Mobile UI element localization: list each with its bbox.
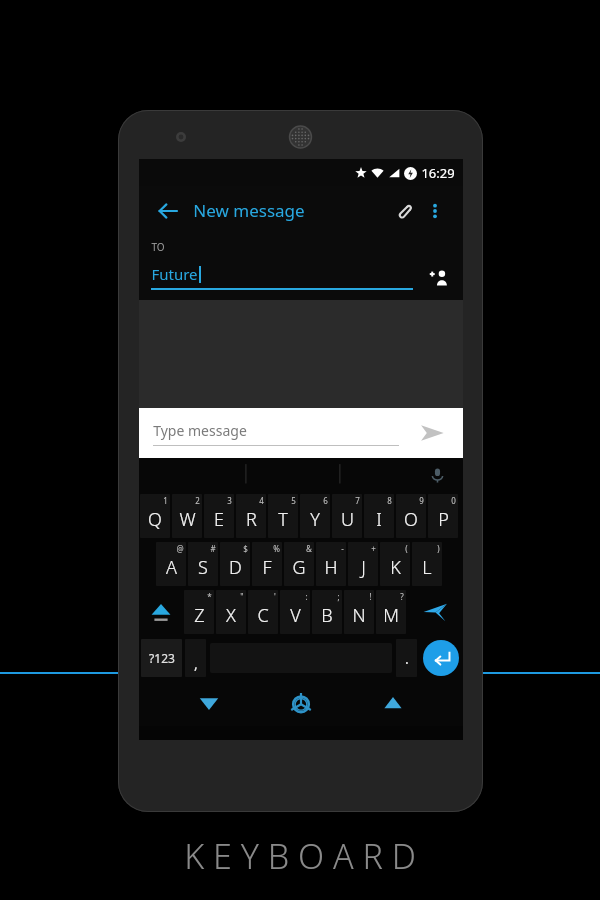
staticText: 16:29 [421, 164, 455, 182]
staticText: ! [369, 591, 372, 602]
staticText: E [214, 507, 224, 532]
button[interactable]: , [185, 639, 206, 677]
staticText: ; [337, 591, 340, 602]
staticText: * [207, 591, 212, 602]
button[interactable]: Add contact [423, 262, 453, 292]
staticText: K [390, 555, 401, 580]
staticText: TO [151, 240, 165, 254]
staticText: X [226, 603, 236, 628]
button[interactable]: ?123 [141, 639, 182, 677]
button[interactable]: ; [312, 590, 342, 634]
staticText: P [438, 507, 449, 532]
staticText: ' [274, 591, 276, 602]
button[interactable]: & [284, 542, 314, 586]
button[interactable]: @ [156, 542, 186, 586]
staticText: C [257, 603, 269, 628]
staticText: 7 [355, 495, 360, 506]
staticText: H [324, 555, 338, 580]
button[interactable]: % [252, 542, 282, 586]
staticText: 8 [387, 495, 392, 506]
button[interactable]: Type message [153, 421, 399, 446]
staticText: # [210, 543, 216, 554]
staticText: 6 [323, 495, 328, 506]
staticText: S [198, 555, 208, 580]
staticText: I [376, 507, 382, 532]
button[interactable]: 0 [428, 494, 458, 538]
button[interactable]: 4 [236, 494, 266, 538]
staticText: W [179, 507, 196, 532]
staticText: ( [405, 543, 408, 554]
button[interactable]: ) [412, 542, 442, 586]
staticText: Y [310, 507, 320, 532]
staticText: F [262, 555, 272, 580]
button[interactable]: Home [279, 681, 323, 725]
staticText: 5 [291, 495, 296, 506]
staticText: 1 [163, 495, 168, 506]
staticText: J [361, 555, 366, 580]
staticText: $ [243, 543, 248, 554]
button[interactable]: Send [413, 414, 451, 452]
staticText: : [305, 591, 308, 602]
button[interactable]: 7 [332, 494, 362, 538]
button[interactable]: $ [220, 542, 250, 586]
staticText: ? [400, 591, 404, 602]
button[interactable]: Attach [387, 195, 419, 227]
button[interactable]: . [396, 639, 417, 677]
staticText: . [405, 649, 409, 668]
staticText: M [383, 603, 399, 628]
button[interactable]: Voice input [425, 463, 449, 487]
staticText: 0 [451, 495, 456, 506]
staticText: R [246, 507, 257, 532]
staticText: Future [151, 264, 198, 284]
button[interactable]: ' [248, 590, 278, 634]
staticText: V [290, 603, 301, 628]
button[interactable]: Back [187, 681, 231, 725]
staticText: Z [194, 603, 205, 628]
button[interactable]: Recents [371, 681, 415, 725]
staticText: 3 [227, 495, 232, 506]
staticText: T [278, 507, 288, 532]
button[interactable]: Backspace [408, 590, 462, 634]
button[interactable]: ! [344, 590, 374, 634]
staticText: " [240, 591, 244, 602]
button[interactable]: : [280, 590, 310, 634]
staticText: B [321, 603, 333, 628]
staticText: U [341, 507, 354, 532]
button[interactable]: 5 [268, 494, 298, 538]
button[interactable]: * [184, 590, 214, 634]
button[interactable]: - [316, 542, 346, 586]
staticText: New message [193, 199, 305, 222]
button[interactable]: 8 [364, 494, 394, 538]
staticText: % [273, 543, 280, 554]
button[interactable]: Back [151, 194, 185, 228]
button[interactable]: 1 [140, 494, 170, 538]
button[interactable]: + [348, 542, 378, 586]
staticText: + [371, 543, 376, 554]
staticText: @ [176, 543, 184, 554]
button[interactable]: More options [419, 195, 451, 227]
button[interactable]: Shift [140, 590, 181, 634]
button[interactable]: # [188, 542, 218, 586]
staticText: Q [148, 507, 162, 532]
button[interactable]: ( [380, 542, 410, 586]
button[interactable]: 2 [172, 494, 202, 538]
staticText: O [404, 507, 418, 532]
staticText: 2 [195, 495, 200, 506]
button[interactable]: Enter [423, 640, 459, 676]
button[interactable]: 3 [204, 494, 234, 538]
staticText: K E Y B O A R D [184, 833, 416, 879]
button[interactable]: 9 [396, 494, 426, 538]
staticText: G [292, 555, 306, 580]
staticText: & [306, 543, 312, 554]
staticText: L [422, 555, 432, 580]
staticText: A [166, 555, 177, 580]
staticText: ?123 [149, 650, 175, 666]
button[interactable]: 6 [300, 494, 330, 538]
button[interactable]: ? [376, 590, 406, 634]
staticText: 4 [259, 495, 264, 506]
button[interactable]: " [216, 590, 246, 634]
button[interactable]: Future [151, 264, 413, 290]
staticText: 9 [419, 495, 424, 506]
staticText: D [229, 555, 242, 580]
